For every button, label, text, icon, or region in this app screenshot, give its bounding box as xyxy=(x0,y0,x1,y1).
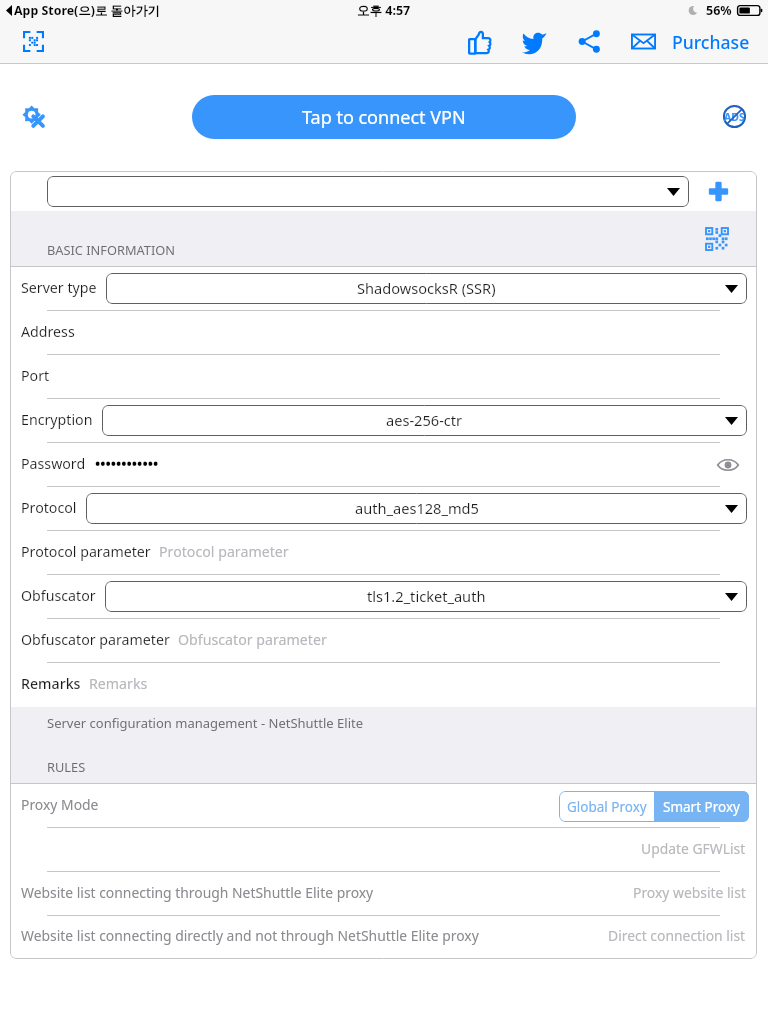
staticText: Address xyxy=(21,322,75,341)
staticText: Website list connecting through NetShutt… xyxy=(21,883,374,902)
staticText: 오후 4:57 xyxy=(357,2,411,19)
button[interactable] xyxy=(47,176,689,207)
button[interactable]: Twitter xyxy=(512,20,556,63)
button[interactable]: Mail xyxy=(621,20,665,63)
staticText: ADS xyxy=(724,110,745,124)
button[interactable]: Remove ads xyxy=(714,96,754,136)
staticText: auth_aes128_md5 xyxy=(355,498,479,518)
staticText: BASIC INFORMATION xyxy=(47,241,175,258)
staticText: Server type xyxy=(21,278,97,297)
staticText: Update GFWList xyxy=(641,839,746,858)
button[interactable]: Proxy Mode xyxy=(10,784,757,828)
staticText: Global Proxy xyxy=(567,798,647,816)
button[interactable]: Encryption xyxy=(10,399,757,443)
button[interactable]: Tap to connect VPN xyxy=(192,95,576,139)
staticText: Remarks xyxy=(21,674,81,693)
staticText: Password xyxy=(21,454,86,473)
button[interactable]: Password xyxy=(10,443,757,487)
staticText: Protocol parameter xyxy=(159,542,289,561)
staticText: ShadowsocksR (SSR) xyxy=(357,278,496,298)
staticText: RULES xyxy=(47,758,86,775)
button[interactable]: Global Proxy xyxy=(559,791,654,822)
button[interactable]: Scan QR code xyxy=(11,20,55,63)
staticText: Proxy Mode xyxy=(21,795,99,814)
button[interactable]: Server type xyxy=(10,267,757,311)
button[interactable]: Share xyxy=(567,20,611,63)
button[interactable]: Website list connecting through NetShutt… xyxy=(10,872,757,916)
button[interactable]: Like xyxy=(458,20,502,63)
staticText: Protocol parameter xyxy=(21,542,151,561)
staticText: Obfuscator parameter xyxy=(178,630,327,649)
button[interactable]: Obfuscator parameter xyxy=(10,619,757,663)
button[interactable]: Add server xyxy=(689,172,747,211)
button[interactable]: Protocol parameter xyxy=(10,531,757,575)
button[interactable]: Port xyxy=(10,355,757,399)
button[interactable]: Obfuscator xyxy=(10,575,757,619)
staticText: Remarks xyxy=(89,674,148,693)
button[interactable]: Update GFWList xyxy=(10,828,757,872)
staticText: Website list connecting directly and not… xyxy=(21,926,479,945)
staticText: aes-256-ctr xyxy=(386,410,463,430)
button[interactable]: Website list connecting directly and not… xyxy=(10,916,757,959)
staticText: Tap to connect VPN xyxy=(302,105,466,130)
staticText: Server configuration management - NetShu… xyxy=(47,714,364,732)
button[interactable]: Settings xyxy=(13,96,53,136)
staticText: Encryption xyxy=(21,410,93,429)
staticText: 56% xyxy=(706,2,732,19)
button[interactable]: Show password xyxy=(713,450,743,480)
button[interactable]: Protocol xyxy=(10,487,757,531)
staticText: Port xyxy=(21,366,50,385)
staticText: •••••••••••• xyxy=(95,454,159,473)
staticText: Direct connection list xyxy=(608,926,746,945)
staticText: Purchase xyxy=(672,30,750,54)
button[interactable]: Show QR code xyxy=(704,226,730,252)
staticText: Obfuscator parameter xyxy=(21,630,170,649)
staticText: tls1.2_ticket_auth xyxy=(367,586,486,606)
staticText: Obfuscator xyxy=(21,586,96,605)
button[interactable]: Address xyxy=(10,311,757,355)
staticText: Protocol xyxy=(21,498,77,517)
staticText: App Store(으)로 돌아가기 xyxy=(14,2,161,19)
button[interactable]: Remarks xyxy=(10,663,757,707)
button[interactable]: Smart Proxy xyxy=(654,791,749,822)
staticText: Proxy website list xyxy=(633,883,746,902)
staticText: Smart Proxy xyxy=(663,798,740,816)
button[interactable]: Purchase xyxy=(672,20,750,63)
